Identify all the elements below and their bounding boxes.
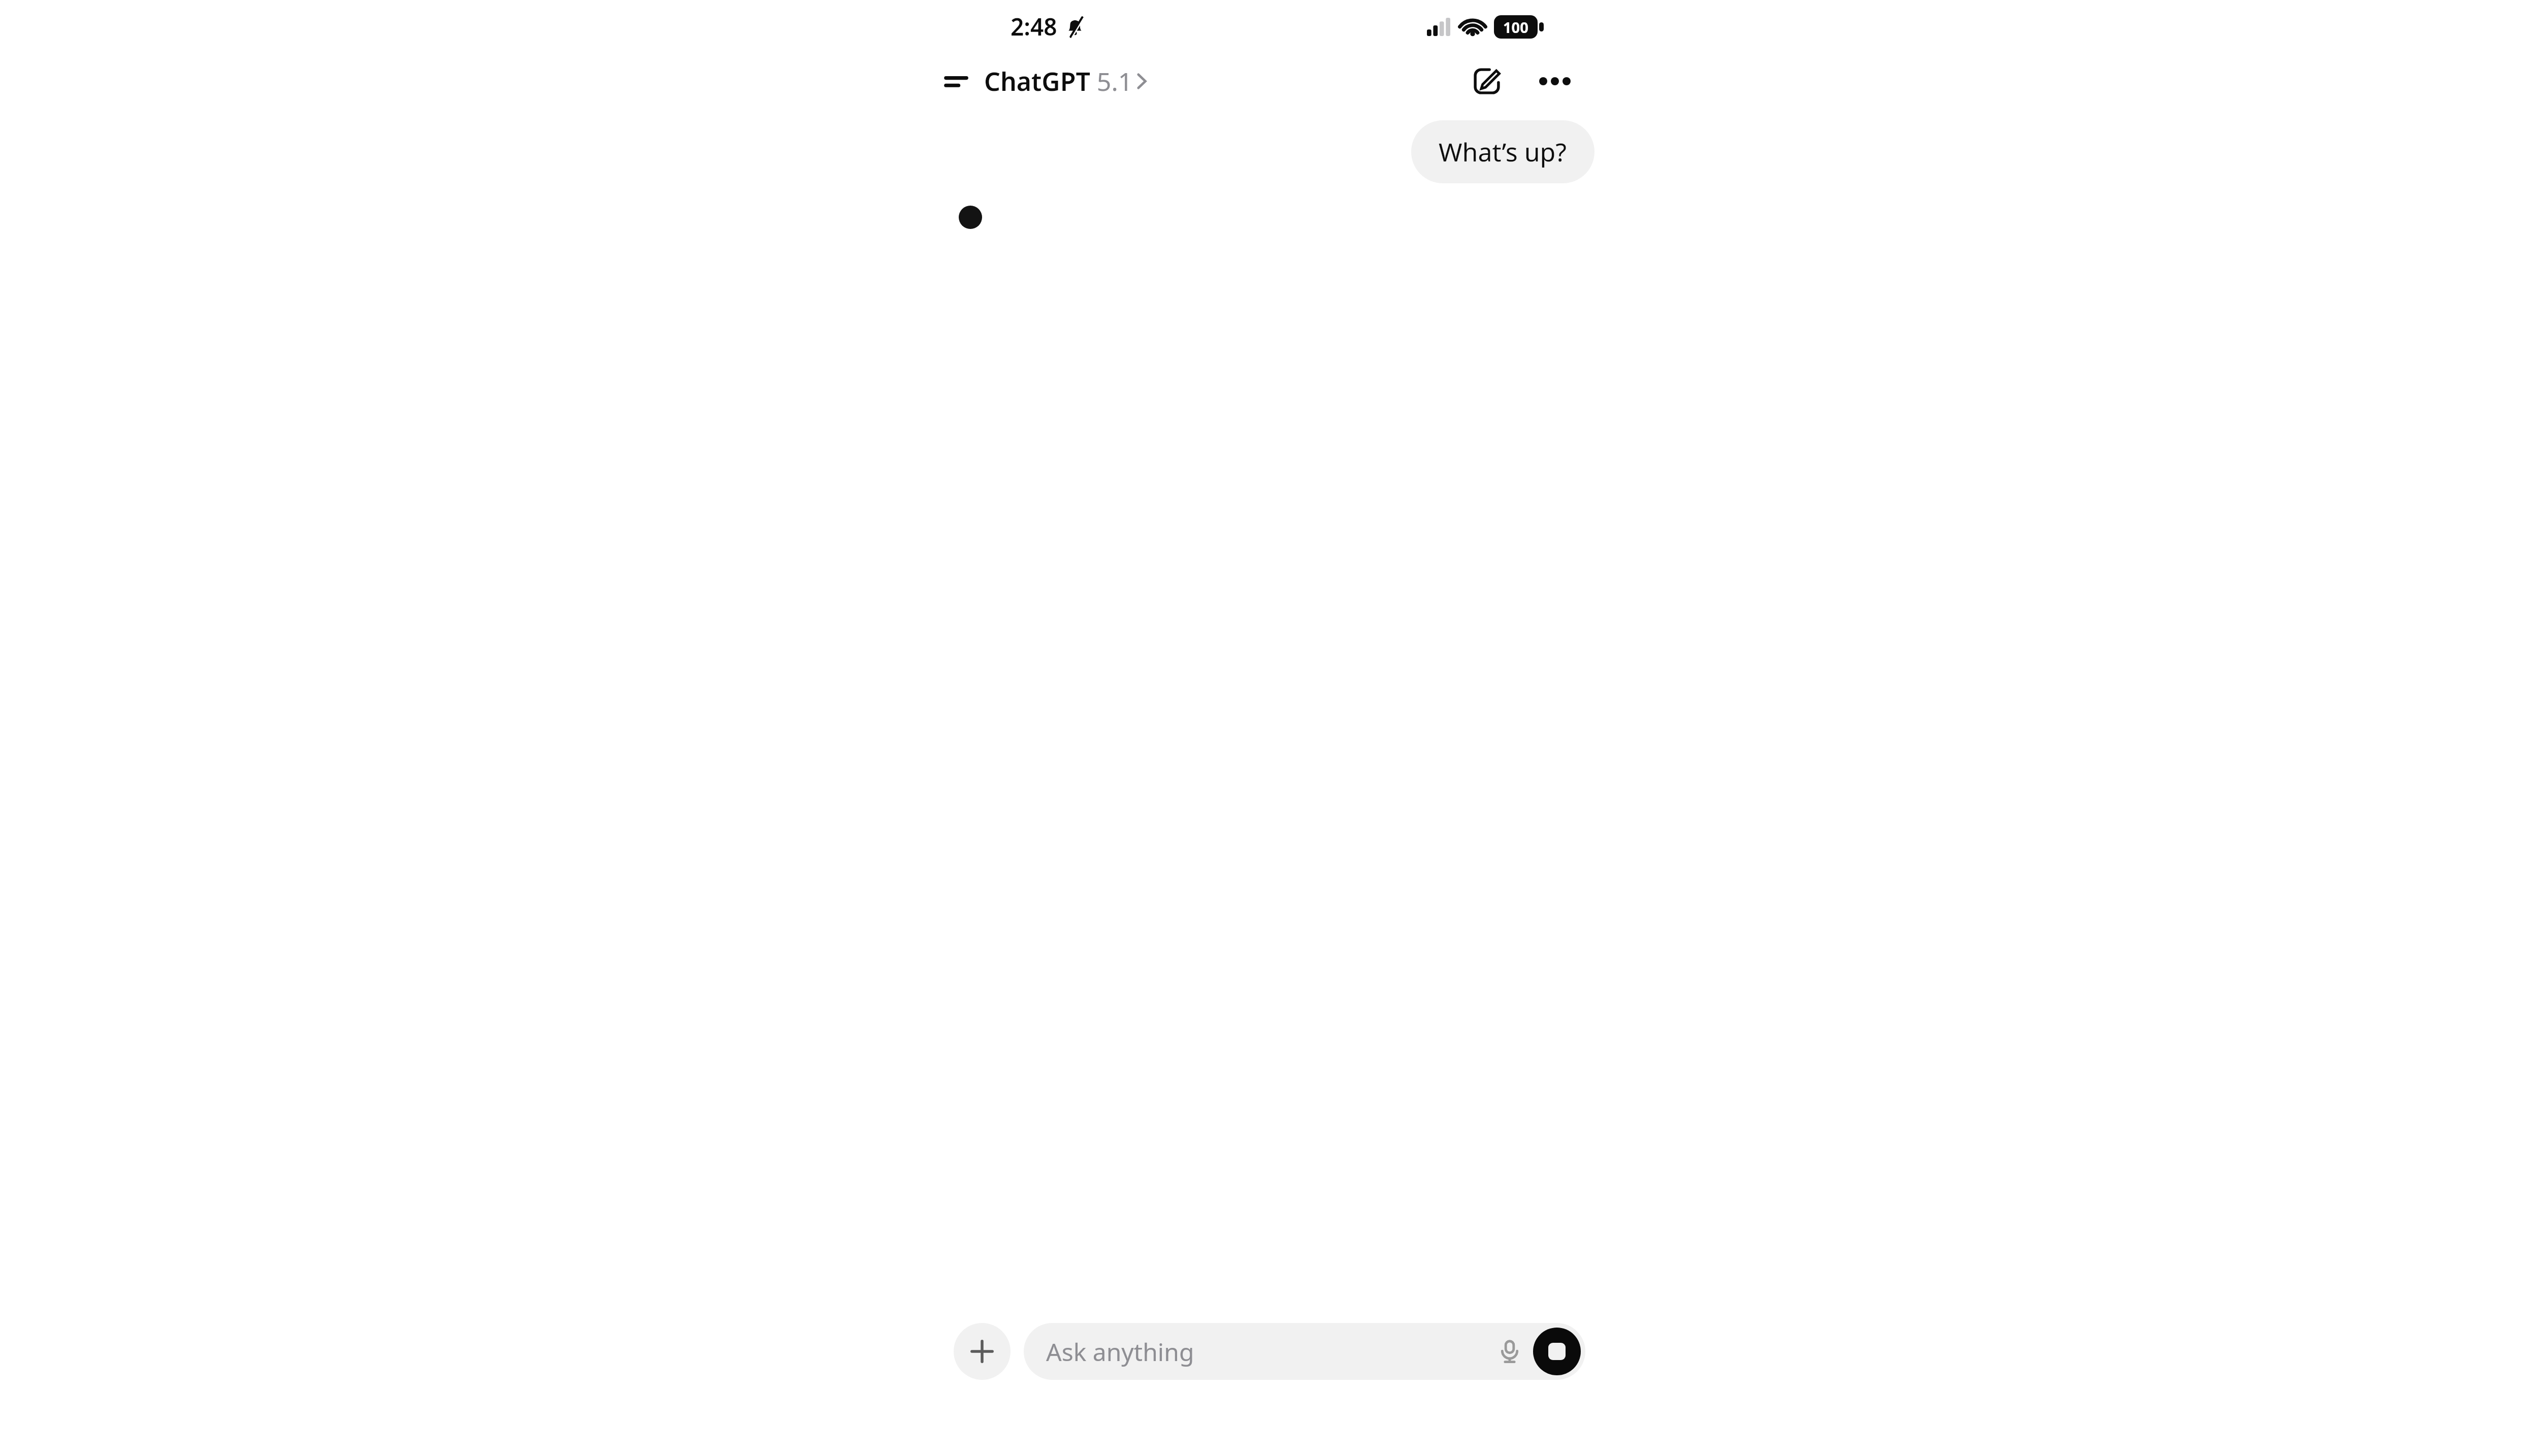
- button[interactable]: More options: [1532, 58, 1578, 105]
- staticText: 2:48: [1011, 11, 1057, 43]
- staticText: Ask anything: [1046, 1335, 1488, 1368]
- button[interactable]: Open sidebar: [934, 59, 978, 103]
- button[interactable]: New chat: [1463, 58, 1510, 105]
- button[interactable]: What’s up?: [1411, 120, 1594, 183]
- button[interactable]: Add attachment: [954, 1323, 1011, 1380]
- button[interactable]: Stop generating: [1533, 1328, 1581, 1375]
- staticText: ChatGPT 5.1: [984, 64, 1133, 98]
- button[interactable]: Ask anything: [1024, 1323, 1585, 1380]
- staticText: 100: [1503, 17, 1528, 37]
- button[interactable]: Voice input: [1488, 1330, 1531, 1373]
- staticText: What’s up?: [1439, 135, 1567, 169]
- button[interactable]: ChatGPT 5.1: [981, 60, 1149, 103]
